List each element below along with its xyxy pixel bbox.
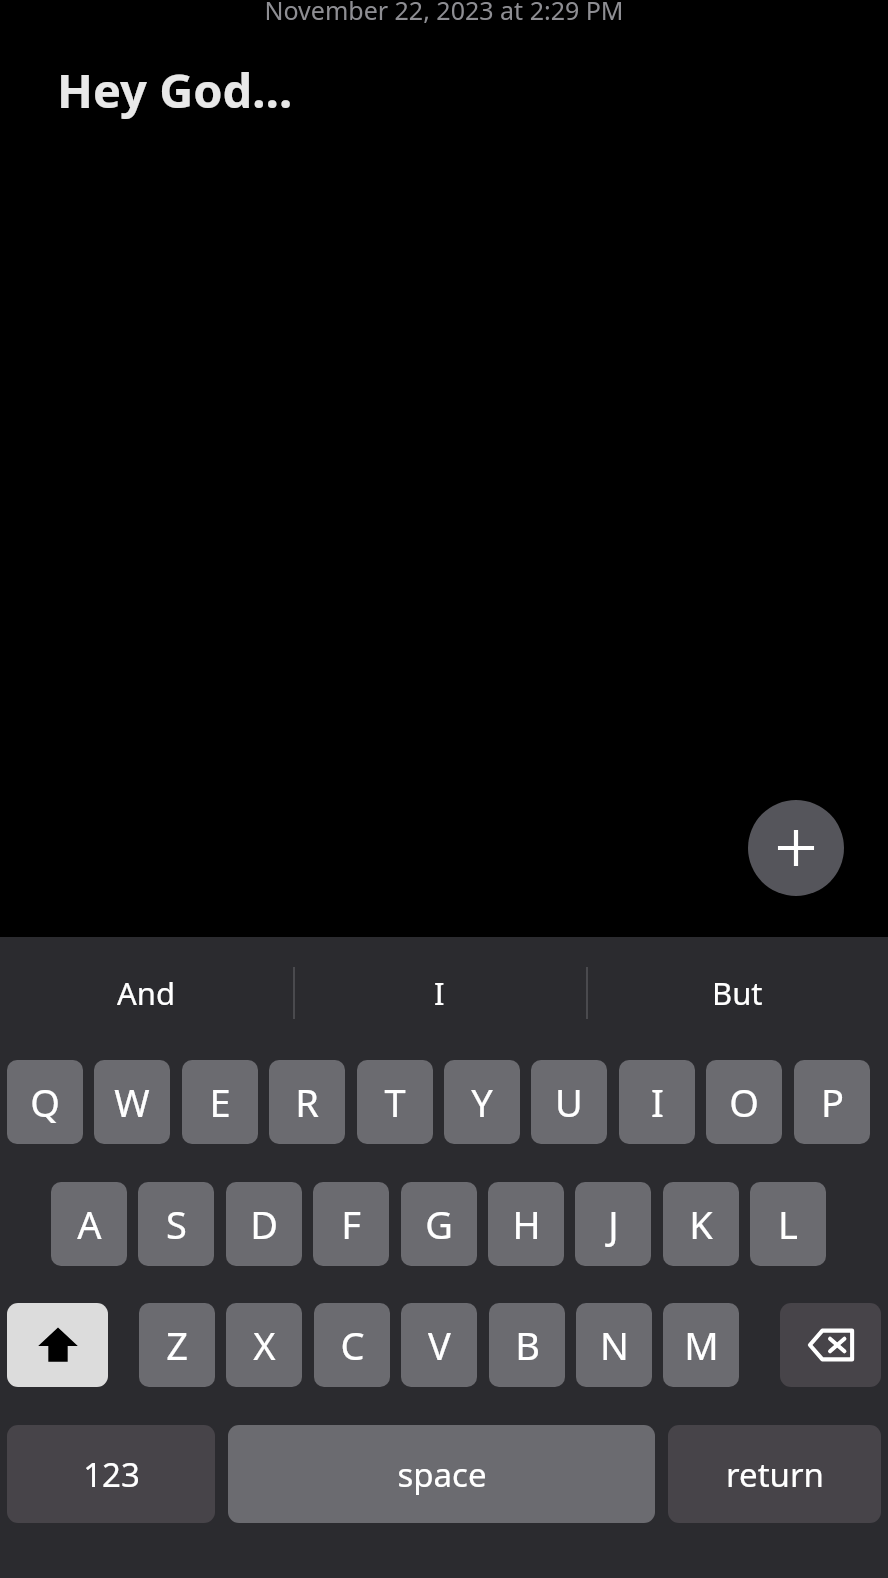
button[interactable]: A [51, 1182, 127, 1266]
staticText: N [600, 1319, 629, 1371]
staticText: U [555, 1076, 583, 1128]
button[interactable]: K [663, 1182, 739, 1266]
staticText: Hey God… [57, 58, 293, 122]
staticText: G [425, 1198, 453, 1250]
staticText: W [114, 1076, 150, 1128]
button[interactable]: Z [139, 1303, 215, 1387]
button[interactable]: C [314, 1303, 390, 1387]
staticText: O [729, 1076, 759, 1128]
staticText: Y [471, 1076, 493, 1128]
staticText: D [250, 1198, 278, 1250]
button[interactable]: And [0, 959, 293, 1027]
staticText: X [253, 1319, 276, 1371]
staticText: R [295, 1076, 319, 1128]
button[interactable]: F [313, 1182, 389, 1266]
staticText: L [778, 1198, 798, 1250]
button[interactable]: R [269, 1060, 345, 1144]
staticText: I [434, 972, 445, 1014]
staticText: return [726, 1452, 824, 1497]
button[interactable]: 123 [7, 1425, 215, 1523]
staticText: M [684, 1319, 719, 1371]
button[interactable]: T [357, 1060, 433, 1144]
button[interactable]: space [228, 1425, 655, 1523]
staticText: C [340, 1319, 365, 1371]
button[interactable]: return [668, 1425, 881, 1523]
button[interactable]: I [293, 959, 586, 1027]
button[interactable]: H [488, 1182, 564, 1266]
staticText: F [341, 1198, 361, 1250]
staticText: But [712, 972, 763, 1014]
button[interactable]: W [94, 1060, 170, 1144]
button[interactable]: L [750, 1182, 826, 1266]
staticText: H [512, 1198, 541, 1250]
staticText: J [608, 1198, 619, 1250]
button[interactable]: Backspace [780, 1303, 881, 1387]
staticText: Q [30, 1076, 60, 1128]
button[interactable]: Q [7, 1060, 83, 1144]
button[interactable]: I [619, 1060, 695, 1144]
staticText: S [166, 1198, 187, 1250]
staticText: P [821, 1076, 844, 1128]
staticText: K [689, 1198, 713, 1250]
button[interactable]: B [489, 1303, 565, 1387]
button[interactable]: Add attachment [748, 800, 844, 896]
button[interactable]: O [706, 1060, 782, 1144]
staticText: space [397, 1452, 487, 1497]
staticText: B [515, 1319, 540, 1371]
button[interactable]: U [531, 1060, 607, 1144]
button[interactable]: D [226, 1182, 302, 1266]
button[interactable]: S [138, 1182, 214, 1266]
staticText: Z [166, 1319, 188, 1371]
staticText: A [77, 1198, 102, 1250]
button[interactable]: Shift [7, 1303, 108, 1387]
staticText: November 22, 2023 at 2:29 PM [264, 0, 624, 27]
button[interactable]: E [182, 1060, 258, 1144]
staticText: 123 [83, 1452, 140, 1497]
staticText: T [384, 1076, 406, 1128]
staticText: And [117, 972, 176, 1014]
staticText: I [651, 1076, 664, 1128]
staticText: E [209, 1076, 231, 1128]
button[interactable]: M [663, 1303, 739, 1387]
button[interactable]: Y [444, 1060, 520, 1144]
staticText: V [428, 1319, 451, 1371]
button[interactable]: J [575, 1182, 651, 1266]
button[interactable]: P [794, 1060, 870, 1144]
button[interactable]: G [401, 1182, 477, 1266]
button[interactable]: But [586, 959, 888, 1027]
button[interactable]: X [226, 1303, 302, 1387]
button[interactable]: V [401, 1303, 477, 1387]
button[interactable]: N [576, 1303, 652, 1387]
